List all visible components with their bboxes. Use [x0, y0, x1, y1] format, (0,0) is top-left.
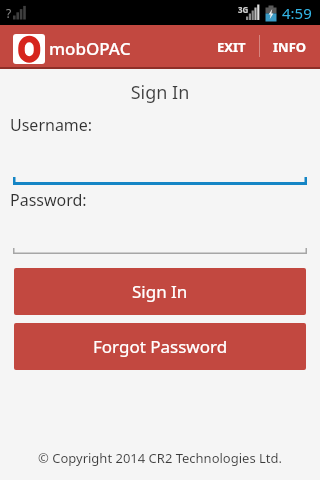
staticText: INFO	[273, 38, 307, 54]
staticText: 3G	[238, 4, 249, 15]
staticText: Username:	[10, 114, 93, 136]
button[interactable]: EXIT	[204, 25, 259, 67]
staticText: EXIT	[217, 38, 246, 54]
staticText: Password:	[10, 189, 87, 211]
button[interactable]: INFO	[260, 25, 320, 67]
staticText: ?	[6, 5, 12, 21]
staticText: 4:59	[282, 3, 312, 23]
button[interactable]	[13, 136, 307, 185]
staticText: Sign In	[132, 280, 188, 303]
staticText: Sign In	[0, 80, 320, 105]
staticText: © Copyright 2014 CR2 Technologies Ltd.	[0, 449, 320, 467]
button[interactable]	[13, 211, 307, 254]
button[interactable]: Forgot Password	[14, 323, 306, 370]
button[interactable]: Sign In	[14, 268, 306, 315]
staticText: mobOPAC	[49, 37, 131, 60]
staticText: Forgot Password	[93, 335, 228, 358]
